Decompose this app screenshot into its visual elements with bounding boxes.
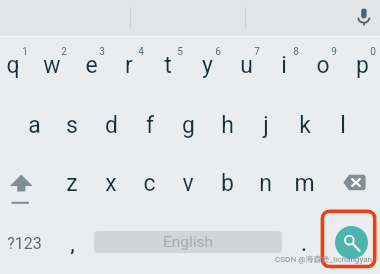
staticText: f	[146, 112, 154, 139]
button[interactable]	[33, 36, 72, 95]
button[interactable]	[91, 155, 130, 214]
button[interactable]: Backspace	[334, 155, 380, 214]
staticText: 2	[61, 46, 67, 58]
staticText: 3	[99, 46, 105, 58]
staticText: ?123	[7, 234, 42, 253]
staticText: s	[66, 112, 78, 139]
button[interactable]	[169, 155, 208, 214]
staticText: k	[299, 112, 311, 139]
staticText: o	[316, 52, 330, 79]
button[interactable]	[324, 95, 363, 154]
button[interactable]	[169, 95, 208, 154]
button[interactable]	[130, 95, 169, 154]
staticText: 1	[22, 46, 28, 58]
button[interactable]	[187, 36, 226, 95]
staticText: d	[105, 112, 118, 139]
staticText: u	[240, 52, 253, 79]
button[interactable]	[53, 95, 92, 154]
button[interactable]: English	[94, 231, 282, 253]
button[interactable]	[265, 36, 304, 95]
staticText: 5	[177, 46, 183, 58]
button[interactable]	[246, 95, 285, 154]
button[interactable]	[285, 155, 324, 214]
staticText: .	[301, 233, 307, 255]
staticText: q	[6, 52, 20, 79]
button[interactable]	[110, 36, 149, 95]
button[interactable]	[207, 155, 246, 214]
staticText: w	[43, 52, 61, 79]
button[interactable]	[53, 155, 92, 214]
staticText: z	[66, 170, 78, 197]
staticText: h	[221, 112, 234, 139]
button[interactable]	[92, 95, 131, 154]
button[interactable]	[130, 155, 169, 214]
staticText: y	[202, 52, 213, 79]
staticText: English	[163, 233, 214, 251]
button[interactable]	[208, 95, 247, 154]
staticText: g	[182, 112, 195, 139]
button[interactable]	[54, 214, 92, 274]
staticText: i	[281, 52, 287, 79]
staticText: c	[143, 170, 156, 197]
button[interactable]	[246, 155, 285, 214]
button[interactable]	[226, 36, 265, 95]
staticText: v	[182, 170, 194, 197]
button[interactable]	[14, 95, 53, 154]
staticText: ,	[70, 233, 75, 255]
staticText: b	[221, 170, 234, 197]
button[interactable]: Voice input	[346, 0, 380, 36]
staticText: p	[356, 52, 369, 79]
button[interactable]	[342, 36, 380, 95]
staticText: CSDN @海森堡_lichangyan	[275, 254, 373, 264]
button[interactable]	[284, 214, 322, 274]
staticText: a	[28, 112, 41, 139]
staticText: t	[164, 52, 172, 79]
staticText: 9	[331, 46, 337, 58]
button[interactable]	[0, 36, 33, 95]
button[interactable]: Shift	[0, 155, 52, 214]
staticText: j	[263, 112, 269, 139]
staticText: e	[85, 52, 98, 79]
button[interactable]	[304, 36, 343, 95]
button[interactable]	[0, 214, 48, 274]
staticText: 8	[293, 46, 299, 58]
button[interactable]	[71, 36, 110, 95]
button[interactable]	[285, 95, 324, 154]
button[interactable]: Search	[335, 226, 368, 259]
staticText: n	[259, 170, 272, 197]
staticText: x	[105, 170, 117, 197]
staticText: 4	[138, 46, 144, 58]
staticText: 6	[215, 46, 221, 58]
staticText: 0	[370, 46, 376, 58]
staticText: r	[125, 52, 133, 79]
staticText: 7	[254, 46, 260, 58]
staticText: l	[340, 112, 346, 139]
staticText: m	[294, 170, 315, 197]
button[interactable]	[149, 36, 188, 95]
